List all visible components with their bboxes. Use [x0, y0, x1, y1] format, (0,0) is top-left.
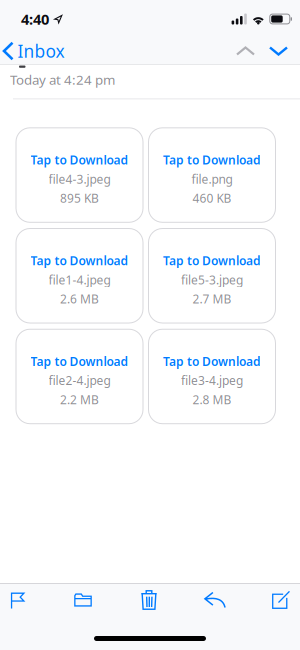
button[interactable]: Move to Folder: [68, 585, 98, 615]
staticText: file1-4.jpeg: [48, 272, 110, 288]
staticText: file5-3.jpeg: [181, 272, 243, 288]
button[interactable]: Tap to Download: [15, 329, 143, 424]
button[interactable]: Inbox: [0, 39, 64, 62]
staticText: Tap to Download: [30, 353, 128, 369]
staticText: Inbox: [17, 39, 64, 62]
staticText: Today at 4:24 pm: [10, 71, 115, 88]
staticText: 2.2 MB: [60, 392, 99, 407]
staticText: 4:40: [21, 9, 49, 29]
staticText: Tap to Download: [163, 152, 261, 168]
button[interactable]: Previous message: [237, 47, 270, 54]
staticText: 460 KB: [192, 190, 231, 206]
staticText: file3-4.jpeg: [181, 372, 243, 388]
staticText: file4-3.jpeg: [48, 171, 110, 187]
staticText: Tap to Download: [163, 353, 261, 369]
button[interactable]: Tap to Download: [15, 228, 143, 323]
staticText: 2.6 MB: [60, 291, 99, 307]
button[interactable]: Tap to Download: [15, 127, 143, 223]
staticText: file2-4.jpeg: [48, 372, 110, 388]
button[interactable]: Tap to Download: [148, 228, 276, 323]
button[interactable]: Tap to Download: [148, 329, 276, 424]
button[interactable]: Delete: [134, 585, 164, 615]
button[interactable]: Flag: [2, 585, 32, 615]
staticText: file.png: [191, 171, 232, 187]
staticText: Tap to Download: [163, 253, 261, 269]
button[interactable]: Next message: [270, 47, 300, 54]
button[interactable]: Tap to Download: [148, 127, 276, 223]
staticText: Tap to Download: [30, 152, 128, 168]
staticText: 2.7 MB: [192, 291, 231, 307]
staticText: Tap to Download: [30, 253, 128, 269]
button[interactable]: Reply: [200, 585, 230, 615]
staticText: 895 KB: [60, 190, 99, 206]
button[interactable]: Compose: [266, 585, 296, 615]
staticText: 2.8 MB: [192, 392, 231, 407]
